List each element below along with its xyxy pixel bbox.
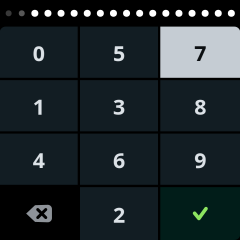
button[interactable]: 3 bbox=[80, 80, 158, 131]
button[interactable]: 8 bbox=[160, 80, 240, 131]
button[interactable]: 4 bbox=[0, 134, 78, 185]
staticText: 7 bbox=[194, 39, 206, 67]
button[interactable]: Confirm bbox=[160, 187, 240, 240]
staticText: 1 bbox=[33, 92, 45, 121]
button[interactable]: 7 bbox=[160, 27, 240, 78]
staticText: 0 bbox=[33, 39, 45, 67]
staticText: 8 bbox=[194, 92, 206, 121]
button[interactable]: Delete bbox=[0, 187, 78, 240]
staticText: 4 bbox=[33, 146, 45, 174]
button[interactable]: 1 bbox=[0, 80, 78, 131]
staticText: 2 bbox=[113, 200, 125, 228]
button[interactable]: 5 bbox=[80, 27, 158, 78]
button[interactable]: 2 bbox=[80, 187, 158, 240]
button[interactable]: 9 bbox=[160, 134, 240, 185]
staticText: 6 bbox=[113, 146, 125, 174]
staticText: 9 bbox=[194, 146, 206, 174]
button[interactable]: 6 bbox=[80, 134, 158, 185]
staticText: 5 bbox=[113, 39, 125, 67]
button[interactable]: 0 bbox=[0, 27, 78, 78]
staticText: 3 bbox=[113, 92, 125, 121]
